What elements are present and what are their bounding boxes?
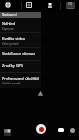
- button[interactable]: Scene mode: [26, 2, 32, 8]
- staticText: Kvalita videa: [2, 36, 25, 41]
- button[interactable]: Značky GPS: [0, 61, 41, 72]
- button[interactable]: Nastavení: [0, 12, 41, 18]
- staticText: Zapnuto: [2, 27, 14, 31]
- staticText: Vnitřní paměť: [2, 82, 21, 84]
- button[interactable]: Video mode: [58, 128, 64, 132]
- staticText: Velmi jemné: [2, 42, 19, 46]
- button[interactable]: Gallery: [4, 129, 11, 136]
- button[interactable]: Storage: [48, 3, 52, 8]
- button[interactable]: Settings: [5, 2, 11, 8]
- staticText: HQ: [68, 2, 73, 6]
- staticText: Stabilizace obrazu: [2, 51, 35, 56]
- staticText: Nastavení: [2, 13, 17, 17]
- staticText: Značky GPS: [2, 63, 24, 68]
- staticText: Náhled: [2, 21, 16, 26]
- button[interactable]: Photo mode: [70, 128, 75, 133]
- button[interactable]: Record: [36, 124, 46, 134]
- button[interactable]: Preferované úložiště: [0, 73, 41, 84]
- staticText: Preferované úložiště: [2, 76, 40, 81]
- button[interactable]: Video resolution: [66, 2, 75, 9]
- button[interactable]: Stabilizace obrazu: [0, 48, 41, 60]
- staticText: 1080p: [67, 6, 74, 9]
- button[interactable]: Kvalita videa: [0, 33, 41, 47]
- button[interactable]: Náhled: [0, 18, 41, 32]
